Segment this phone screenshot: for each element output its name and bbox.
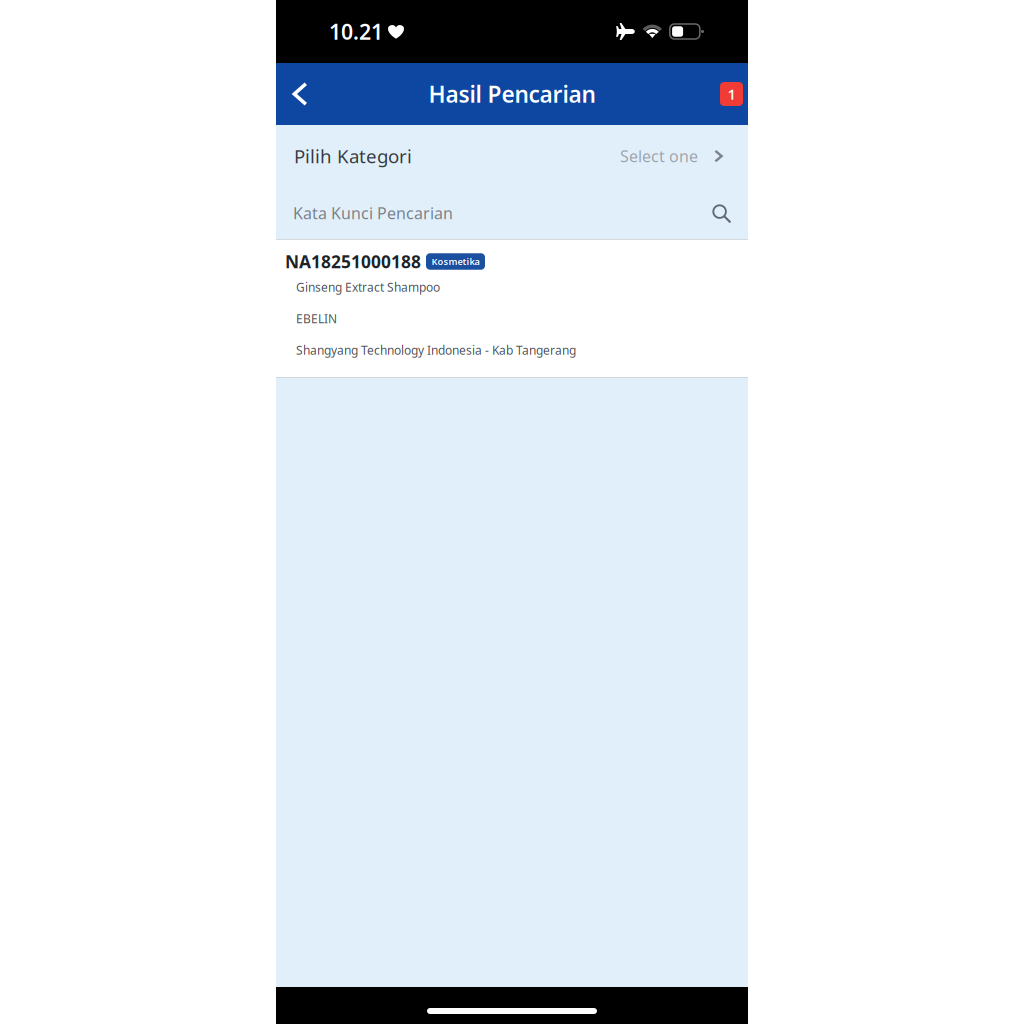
button[interactable]: Kata Kunci Pencarian	[276, 182, 748, 239]
staticText: NA18251000188	[285, 250, 421, 273]
staticText: Kata Kunci Pencarian	[293, 202, 453, 224]
staticText: Hasil Pencarian	[428, 79, 595, 109]
staticText: Pilih Kategori	[294, 144, 412, 168]
staticText: EBELIN	[296, 311, 337, 326]
staticText: Select one	[620, 145, 698, 167]
button[interactable]: Notifications, 1 new	[720, 82, 743, 106]
staticText: Kosmetika	[431, 255, 479, 268]
staticText: 10.21	[329, 17, 383, 46]
button[interactable]: Back	[278, 63, 322, 125]
staticText: 1	[727, 84, 735, 104]
button[interactable]: Pilih Kategori	[276, 125, 748, 182]
staticText: Ginseng Extract Shampoo	[296, 279, 440, 295]
button[interactable]: NA18251000188	[276, 240, 748, 377]
staticText: Shangyang Technology Indonesia - Kab Tan…	[296, 342, 576, 358]
